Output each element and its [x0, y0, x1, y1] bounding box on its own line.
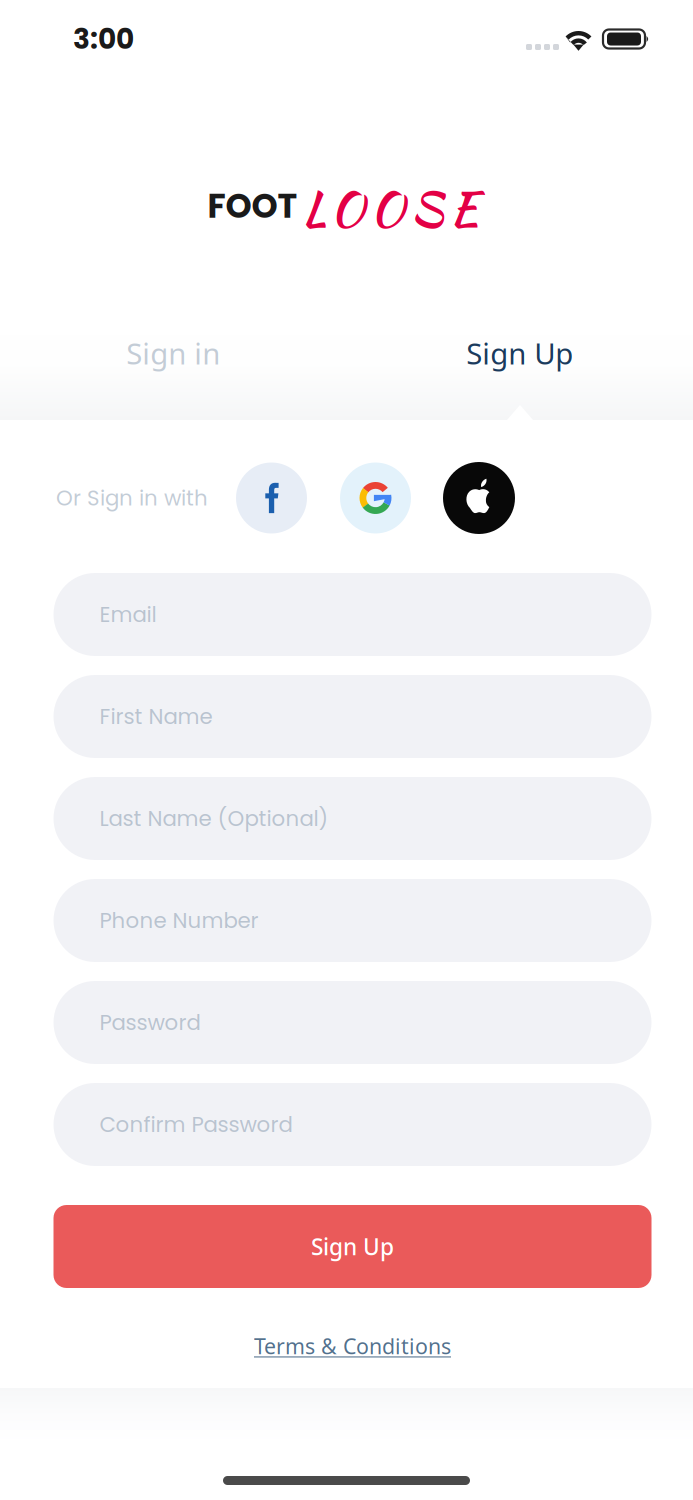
staticText: 3:00 [73, 19, 134, 59]
button[interactable]: Sign up with Google [340, 462, 411, 533]
staticText: FOOT [207, 183, 297, 229]
staticText: LOOSE [302, 174, 477, 242]
button[interactable]: Phone Number [53, 879, 651, 962]
staticText: Or Sign in with [56, 483, 208, 513]
button[interactable]: Sign in [0, 306, 346, 420]
staticText: Confirm Password [99, 1110, 292, 1139]
staticText: Email [99, 600, 156, 629]
button[interactable]: Email [53, 573, 651, 656]
button[interactable]: Sign up with Facebook [236, 462, 307, 533]
button[interactable]: Password [53, 981, 651, 1064]
staticText: Phone Number [99, 906, 258, 935]
button[interactable]: Sign Up [53, 1205, 651, 1288]
button[interactable]: Sign up with Apple [443, 462, 515, 534]
button[interactable]: First Name [53, 675, 651, 758]
staticText: Sign Up [466, 333, 573, 372]
staticText: Last Name (Optional) [99, 804, 328, 833]
button[interactable]: Last Name (Optional) [53, 777, 651, 860]
button[interactable]: Confirm Password [53, 1083, 651, 1166]
staticText: Sign Up [311, 1231, 394, 1262]
staticText: Terms & Conditions [254, 1332, 451, 1360]
button[interactable]: Terms & Conditions [222, 1324, 482, 1368]
staticText: Password [99, 1008, 200, 1037]
staticText: Sign in [126, 333, 220, 372]
button[interactable]: Sign Up [346, 306, 693, 420]
staticText: First Name [99, 702, 212, 731]
